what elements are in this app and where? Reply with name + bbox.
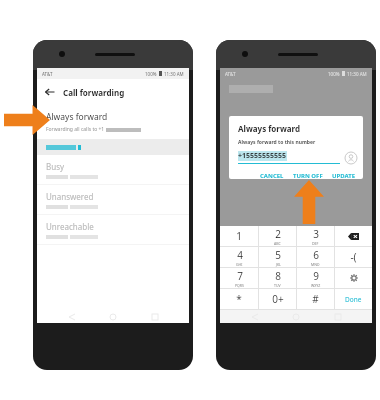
button[interactable] <box>37 140 189 155</box>
button[interactable]: 7 <box>220 268 258 288</box>
staticText: TURN OFF <box>293 172 323 178</box>
button[interactable]: 9 <box>297 268 334 288</box>
button[interactable]: Contacts <box>344 151 357 164</box>
staticText: Always forward <box>238 123 301 134</box>
staticText: 8 <box>275 269 281 283</box>
button[interactable]: 4 <box>220 247 258 267</box>
button[interactable]: Back <box>37 79 189 105</box>
staticText: WXYZ <box>311 283 321 288</box>
staticText: 9 <box>313 269 319 283</box>
staticText: AT&T <box>42 71 53 77</box>
staticText: UPDATE <box>332 172 356 178</box>
button[interactable]: Unreachable <box>37 215 189 244</box>
button[interactable]: Home <box>106 310 120 323</box>
staticText: JKL <box>276 262 281 267</box>
staticText: 7 <box>237 269 243 283</box>
button[interactable]: Backspace <box>335 226 372 246</box>
staticText: * <box>236 292 242 306</box>
staticText: AT&T <box>225 71 236 77</box>
button[interactable]: CANCEL <box>259 171 285 179</box>
other: Backspace <box>335 226 372 246</box>
staticText: GHI <box>236 262 243 267</box>
staticText: 4 <box>237 248 243 262</box>
staticText: +15555555555 <box>238 151 287 161</box>
staticText: Busy <box>46 161 65 172</box>
staticText: 11:30 AM <box>347 71 367 77</box>
button[interactable]: Settings <box>335 268 372 288</box>
button[interactable]: 0+ <box>259 289 296 309</box>
staticText: 5 <box>275 248 281 262</box>
button[interactable]: Back <box>44 86 56 98</box>
button[interactable]: -( <box>335 247 372 267</box>
button[interactable]: * <box>220 289 258 309</box>
staticText: PQRS <box>235 283 244 288</box>
staticText: 3 <box>313 227 319 241</box>
button[interactable]: 8 <box>259 268 296 288</box>
staticText: Forwarding all calls to +1 <box>46 126 105 133</box>
button[interactable]: 3 <box>297 226 334 246</box>
button[interactable]: Busy <box>37 155 189 184</box>
staticText: DEF <box>312 241 319 246</box>
button[interactable]: Recents <box>148 310 162 323</box>
button[interactable]: TURN OFF <box>292 171 324 179</box>
staticText: 11:30 AM <box>164 71 184 77</box>
other: Settings <box>335 268 372 288</box>
staticText: -( <box>350 250 357 264</box>
button[interactable]: Always forward <box>37 105 189 139</box>
staticText: MNO <box>311 262 320 267</box>
button[interactable]: # <box>297 289 334 309</box>
button[interactable]: Done <box>335 289 372 309</box>
staticText: Always forward to this number <box>238 139 316 146</box>
staticText: # <box>312 292 319 306</box>
staticText: Unanswered <box>46 191 94 202</box>
staticText: CANCEL <box>260 172 284 178</box>
button[interactable]: 6 <box>297 247 334 267</box>
staticText: 100% <box>145 71 157 77</box>
button[interactable]: 2 <box>259 226 296 246</box>
staticText: Call forwarding <box>63 87 125 98</box>
button[interactable]: 5 <box>259 247 296 267</box>
staticText: 6 <box>313 248 319 262</box>
button[interactable]: 1 <box>220 226 258 246</box>
button[interactable]: UPDATE <box>331 171 357 179</box>
button[interactable]: Back <box>65 310 79 323</box>
staticText: Unreachable <box>46 221 94 232</box>
staticText: Done <box>345 295 362 304</box>
staticText: TUV <box>274 283 281 288</box>
staticText: 100% <box>328 71 340 77</box>
button[interactable]: Unanswered <box>37 185 189 214</box>
staticText: 1 <box>236 229 242 243</box>
staticText: 2 <box>275 227 281 241</box>
staticText: 0+ <box>272 292 284 306</box>
staticText: ABC <box>274 241 281 246</box>
staticText: Always forward <box>46 111 108 123</box>
